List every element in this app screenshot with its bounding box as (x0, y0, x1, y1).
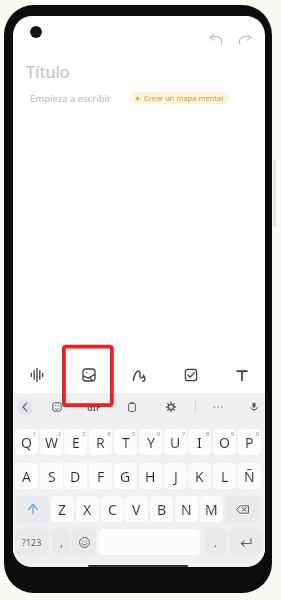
button[interactable]: Undo (203, 26, 229, 52)
button[interactable]: Enter (229, 529, 262, 555)
button[interactable]: U (164, 429, 187, 455)
staticText: Empieza a escribir (30, 92, 111, 105)
button[interactable]: K (188, 463, 211, 489)
staticText: 6 (157, 430, 161, 437)
button[interactable]: Crear un mapa mental (129, 92, 229, 104)
button[interactable]: More options (210, 399, 226, 415)
staticText: 3 (82, 430, 86, 437)
staticText: A (22, 467, 31, 486)
button[interactable]: Redo (232, 26, 258, 52)
button[interactable]: W (40, 429, 63, 455)
staticText: O (219, 433, 230, 452)
staticText: 5 (132, 430, 136, 437)
staticText: J (174, 467, 178, 486)
button[interactable]: T (114, 429, 137, 455)
staticText: 8 (206, 430, 210, 437)
staticText: S (48, 467, 56, 486)
button[interactable]: L (213, 463, 236, 489)
button[interactable]: Checklist (175, 359, 207, 391)
button[interactable]: Insert image (73, 359, 105, 391)
button[interactable]: GIF (82, 400, 106, 414)
staticText: B (157, 500, 167, 519)
button[interactable]: , (52, 529, 71, 555)
button[interactable]: D (64, 463, 87, 489)
staticText: I (197, 433, 202, 452)
staticText: V (132, 500, 141, 519)
staticText: Crear un mapa mental (144, 93, 224, 103)
staticText: G (120, 467, 131, 486)
staticText: Q (21, 433, 32, 452)
button[interactable]: E (64, 429, 87, 455)
staticText: L (221, 467, 229, 486)
staticText: E (72, 433, 80, 452)
staticText: 1 (33, 430, 37, 437)
button[interactable]: A (15, 463, 38, 489)
button[interactable]: G (114, 463, 137, 489)
staticText: T (122, 433, 130, 452)
button[interactable]: M (200, 496, 223, 522)
staticText: Y (147, 433, 155, 452)
button[interactable]: Settings (163, 399, 179, 415)
button[interactable]: Clipboard (124, 399, 140, 415)
staticText: F (97, 467, 105, 486)
staticText: C (108, 500, 117, 519)
button[interactable]: . (205, 529, 226, 555)
button[interactable]: R (89, 429, 112, 455)
button[interactable]: Voice input (246, 399, 262, 415)
staticText: 0 (256, 430, 260, 437)
button[interactable]: J (164, 463, 187, 489)
staticText: W (45, 433, 59, 452)
button[interactable]: H (139, 463, 162, 489)
button[interactable]: I (188, 429, 211, 455)
button[interactable]: ?123 (15, 529, 49, 555)
button[interactable]: V (125, 496, 148, 522)
staticText: ?123 (22, 536, 42, 548)
staticText: K (195, 467, 204, 486)
staticText: X (83, 500, 92, 519)
staticText: Ñ (244, 467, 255, 486)
button[interactable]: N (175, 496, 198, 522)
button[interactable]: Z (51, 496, 74, 522)
button[interactable]: P (238, 429, 261, 455)
staticText: P (245, 433, 254, 452)
button[interactable]: Ñ (238, 463, 261, 489)
staticText: . (214, 535, 217, 550)
button[interactable]: F (89, 463, 112, 489)
button[interactable]: Back (17, 399, 33, 415)
button[interactable]: Audio (21, 359, 53, 391)
staticText: 7 (182, 430, 186, 437)
button[interactable]: C (101, 496, 124, 522)
button[interactable]: B (150, 496, 173, 522)
staticText: , (60, 535, 63, 550)
staticText: 4 (107, 430, 111, 437)
button[interactable]: Emoji (72, 529, 96, 555)
button[interactable]: O (213, 429, 236, 455)
staticText: Z (58, 500, 67, 519)
staticText: M (205, 500, 218, 519)
staticText: H (145, 467, 156, 486)
button[interactable]: Q (15, 429, 38, 455)
staticText: N (181, 500, 192, 519)
staticText: D (70, 467, 81, 486)
staticText: R (96, 433, 105, 452)
staticText: U (170, 433, 181, 452)
button[interactable]: S (40, 463, 63, 489)
button[interactable]: Y (139, 429, 162, 455)
staticText: 2 (58, 430, 62, 437)
button[interactable]: Text format (226, 359, 258, 391)
button[interactable]: Shift (16, 496, 49, 522)
staticText: 9 (231, 430, 235, 437)
staticText: GIF (87, 402, 101, 413)
button[interactable]: X (76, 496, 99, 522)
staticText: Título (26, 60, 70, 82)
button[interactable]: Draw (124, 359, 156, 391)
button[interactable]: Stickers (49, 399, 65, 415)
button[interactable]: Backspace (225, 496, 260, 522)
